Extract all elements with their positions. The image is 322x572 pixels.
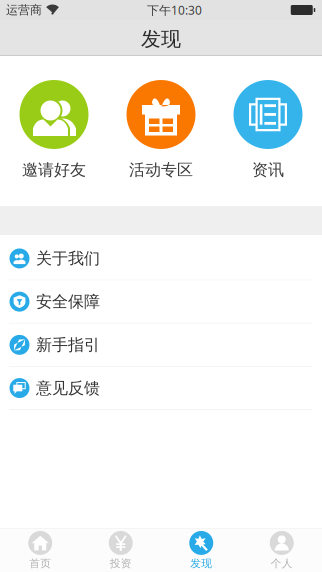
button[interactable]: 首页 xyxy=(0,529,80,572)
button[interactable]: 新手指引 xyxy=(0,324,322,367)
staticText: 新手指引 xyxy=(36,335,100,355)
button[interactable]: 活动专区 xyxy=(107,56,214,206)
staticText: 邀请好友 xyxy=(22,160,86,180)
staticText: 活动专区 xyxy=(129,160,193,180)
staticText: 运营商 xyxy=(6,3,42,17)
staticText: 安全保障 xyxy=(36,292,100,311)
staticText: 意见反馈 xyxy=(36,378,100,398)
staticText: 下午10:30 xyxy=(147,2,202,18)
staticText: 首页 xyxy=(29,557,51,570)
staticText: 资讯 xyxy=(252,160,284,180)
button[interactable]: 安全保障 xyxy=(0,280,322,324)
button[interactable]: 资讯 xyxy=(214,56,321,206)
button[interactable]: 意见反馈 xyxy=(0,367,322,410)
button[interactable]: 发现 xyxy=(161,529,241,572)
staticText: 发现 xyxy=(141,27,181,51)
staticText: 关于我们 xyxy=(36,249,100,268)
staticText: 发现 xyxy=(190,557,212,570)
staticText: 投资 xyxy=(110,557,132,570)
button[interactable]: 投资 xyxy=(80,529,161,572)
button[interactable]: 关于我们 xyxy=(0,237,322,280)
staticText: 个人 xyxy=(271,557,293,570)
button[interactable]: 邀请好友 xyxy=(0,56,107,206)
button[interactable]: 个人 xyxy=(241,529,322,572)
